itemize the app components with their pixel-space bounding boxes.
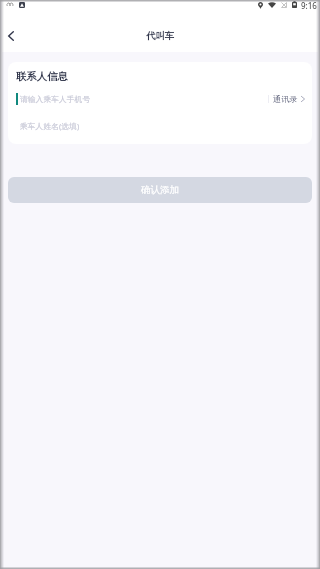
button[interactable]: Back: [2, 22, 28, 48]
staticText: 乘车人姓名(选填): [20, 121, 80, 132]
staticText: 请输入乘车人手机号: [20, 94, 91, 104]
staticText: 确认添加: [141, 184, 179, 196]
button[interactable]: 乘车人姓名(选填): [8, 116, 312, 136]
button[interactable]: 请输入乘车人手机号: [8, 89, 258, 109]
staticText: 通讯录: [273, 94, 298, 104]
button[interactable]: 确认添加: [8, 177, 312, 203]
staticText: 联系人信息: [16, 70, 68, 83]
button[interactable]: 通讯录: [269, 94, 312, 104]
staticText: 9:16: [301, 0, 317, 11]
staticText: 代叫车: [146, 30, 175, 42]
